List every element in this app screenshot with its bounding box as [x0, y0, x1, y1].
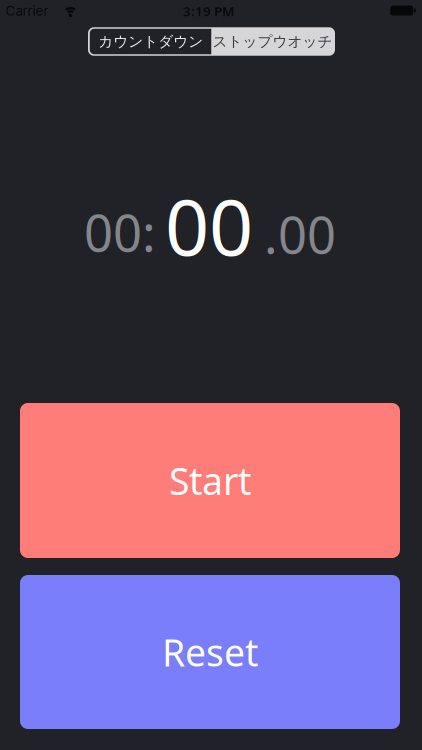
staticText: .00	[264, 200, 336, 268]
button[interactable]: Reset	[20, 575, 400, 729]
button[interactable]: カウントダウン	[90, 29, 212, 54]
staticText: ストップウオッチ	[212, 32, 332, 50]
button[interactable]: Start	[20, 403, 400, 558]
staticText: 00:	[84, 198, 156, 266]
button[interactable]: ストップウオッチ	[211, 29, 333, 54]
staticText: Reset	[162, 627, 258, 677]
staticText: Carrier	[5, 3, 48, 19]
staticText: 3:19 PM	[183, 2, 234, 20]
staticText: Start	[169, 456, 251, 505]
staticText: 00	[165, 174, 253, 277]
staticText: カウントダウン	[98, 32, 203, 50]
